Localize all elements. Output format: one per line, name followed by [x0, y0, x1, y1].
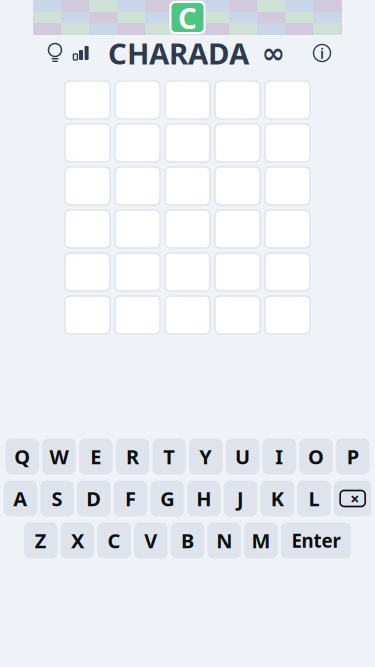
staticText: L — [308, 485, 319, 512]
button[interactable]: I — [262, 438, 296, 474]
staticText: Enter — [291, 528, 340, 553]
staticText: M — [251, 527, 270, 554]
button[interactable]: Charada app icon — [169, 0, 205, 37]
button[interactable]: U — [226, 438, 259, 474]
staticText: C — [108, 527, 121, 554]
staticText: X — [71, 527, 84, 554]
button[interactable]: Q — [6, 438, 39, 474]
staticText: G — [160, 485, 174, 512]
button[interactable]: Enter — [281, 522, 351, 558]
button[interactable]: W — [42, 438, 76, 474]
button[interactable]: T — [152, 438, 186, 474]
staticText: Z — [35, 527, 47, 554]
staticText: × — [350, 488, 359, 509]
button[interactable]: K — [260, 480, 294, 516]
staticText: K — [271, 485, 284, 512]
button[interactable]: F — [114, 480, 147, 516]
staticText: A — [13, 485, 27, 512]
button[interactable]: Z — [24, 522, 57, 558]
button[interactable]: A — [4, 480, 37, 516]
staticText: i — [320, 43, 324, 63]
button[interactable]: J — [224, 480, 257, 516]
staticText: W — [49, 443, 68, 470]
staticText: ∞ — [261, 37, 284, 69]
staticText: R — [126, 443, 139, 470]
staticText: C — [178, 0, 197, 37]
staticText: J — [237, 485, 244, 512]
button[interactable]: M — [244, 522, 278, 558]
staticText: I — [275, 443, 283, 470]
button[interactable]: H — [187, 480, 221, 516]
button[interactable]: O — [299, 438, 333, 474]
staticText: O — [308, 443, 324, 470]
staticText: Q — [14, 443, 30, 470]
staticText: E — [90, 443, 101, 470]
staticText: P — [347, 443, 359, 470]
staticText: N — [216, 527, 232, 554]
button[interactable]: G — [150, 480, 184, 516]
button[interactable]: Y — [189, 438, 223, 474]
button[interactable]: P — [336, 438, 369, 474]
button[interactable]: C — [97, 522, 131, 558]
staticText: F — [125, 485, 136, 512]
staticText: H — [196, 485, 211, 512]
staticText: D — [86, 485, 101, 512]
button[interactable]: Unlimited mode — [261, 40, 285, 66]
button[interactable]: S — [40, 480, 74, 516]
button[interactable]: E — [79, 438, 112, 474]
staticText: T — [163, 443, 175, 470]
button[interactable]: Delete — [334, 480, 371, 516]
staticText: S — [51, 485, 62, 512]
button[interactable]: L — [297, 480, 331, 516]
button[interactable]: V — [134, 522, 168, 558]
button[interactable]: Hint — [44, 40, 66, 66]
staticText: Y — [199, 443, 212, 470]
button[interactable]: X — [61, 522, 94, 558]
staticText: V — [144, 527, 157, 554]
staticText: B — [181, 527, 194, 554]
button[interactable]: B — [171, 522, 204, 558]
button[interactable]: N — [207, 522, 241, 558]
button[interactable]: D — [77, 480, 110, 516]
button[interactable]: Statistics — [70, 40, 92, 66]
staticText: CHARADA — [108, 33, 249, 72]
button[interactable]: R — [116, 438, 149, 474]
button[interactable]: Info — [307, 38, 337, 68]
staticText: U — [235, 443, 250, 470]
